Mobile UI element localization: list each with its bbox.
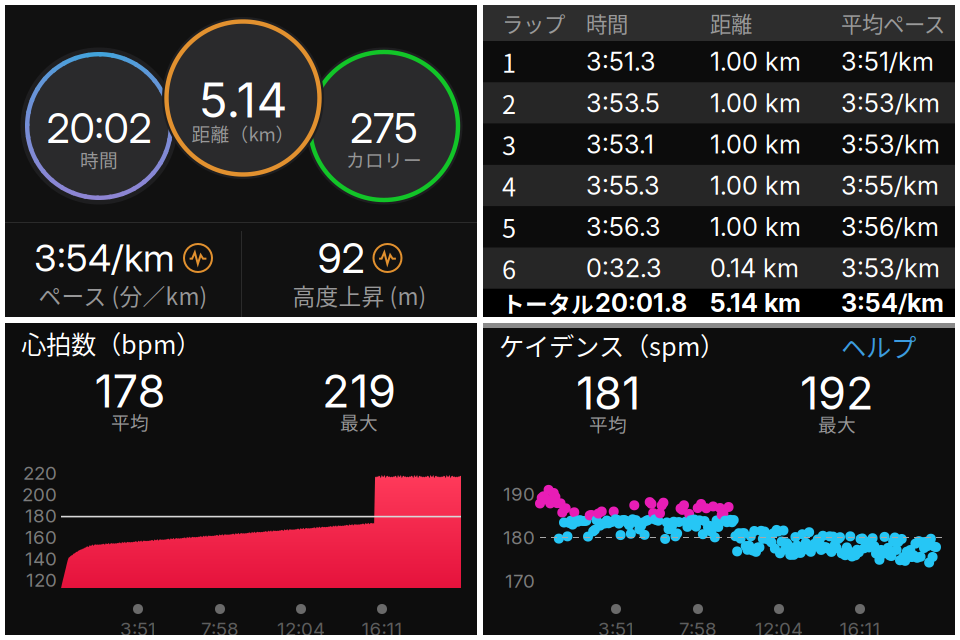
staticText: 平均 — [589, 410, 627, 437]
staticText: 3:55.3 — [586, 170, 660, 201]
staticText: 5 — [502, 208, 516, 245]
staticText: 3:51 — [120, 618, 156, 640]
staticText: 20:02 — [46, 103, 151, 153]
staticText: 1.00 km — [710, 46, 801, 77]
staticText: 距離 — [710, 8, 752, 38]
staticText: 1 — [502, 43, 516, 80]
staticText: 219 — [322, 364, 396, 418]
staticText: ペース (分／km) — [38, 279, 207, 311]
staticText: ラップ — [502, 8, 565, 38]
staticText: 3:53.5 — [586, 88, 660, 118]
staticText: 1.00 km — [710, 211, 801, 242]
staticText: 180 — [25, 504, 57, 527]
staticText: トータル — [502, 286, 594, 319]
staticText: 距離（km） — [191, 119, 294, 146]
staticText: 178 — [94, 364, 165, 418]
staticText: 3:53∕km — [841, 253, 940, 283]
staticText: 3:53∕km — [841, 129, 940, 160]
staticText: 181 — [576, 366, 640, 420]
staticText: 時間 — [80, 146, 118, 173]
staticText: 2 — [502, 85, 516, 121]
staticText: 最大 — [340, 408, 378, 435]
staticText: 時間 — [586, 8, 628, 38]
staticText: 1.00 km — [710, 88, 801, 118]
staticText: 120 — [26, 569, 57, 591]
staticText: 5.14 km — [710, 288, 801, 318]
staticText: 5.14 — [198, 71, 287, 129]
staticText: 最大 — [818, 410, 856, 437]
staticText: 220 — [23, 462, 57, 484]
staticText: 7:58 — [679, 618, 717, 640]
staticText: 1.00 km — [710, 170, 801, 201]
staticText: 170 — [505, 570, 535, 592]
staticText: カロリー — [346, 146, 422, 173]
staticText: 3:56∕km — [841, 211, 939, 242]
staticText: 平均ペース — [841, 8, 945, 38]
staticText: 3:51∕km — [841, 46, 934, 77]
staticText: 192 — [800, 366, 874, 420]
staticText: 20:01.8 — [595, 288, 687, 318]
staticText: 3:53.1 — [586, 129, 654, 160]
staticText: 200 — [22, 483, 57, 506]
staticText: 160 — [25, 526, 57, 548]
staticText: 275 — [350, 103, 418, 153]
staticText: 0.14 km — [710, 253, 799, 283]
staticText: 180 — [503, 526, 535, 549]
staticText: 4 — [502, 167, 516, 204]
staticText: 6 — [502, 250, 516, 286]
staticText: 7:58 — [201, 618, 239, 640]
staticText: 高度上昇 (m) — [292, 279, 426, 311]
staticText: 心拍数（bpm） — [21, 325, 201, 361]
staticText: 3:54∕km — [34, 235, 175, 281]
staticText: 3:56.3 — [586, 211, 661, 242]
staticText: 16:11 — [839, 618, 880, 640]
staticText: 3:53∕km — [841, 88, 940, 118]
staticText: 3:54∕km — [841, 288, 944, 318]
staticText: 140 — [25, 547, 57, 570]
staticText: ヘルプ — [841, 328, 916, 364]
staticText: 3:51 — [598, 618, 634, 640]
staticText: 92 — [317, 233, 364, 283]
staticText: 12:04 — [755, 618, 803, 640]
staticText: 0:32.3 — [586, 253, 662, 283]
staticText: ケイデンス（spm） — [499, 327, 725, 363]
staticText: 3 — [502, 126, 516, 163]
staticText: 3:51.3 — [586, 46, 656, 77]
staticText: 190 — [503, 483, 535, 505]
staticText: 12:04 — [277, 618, 325, 640]
staticText: 1.00 km — [710, 129, 801, 160]
staticText: 3:55∕km — [841, 170, 939, 201]
staticText: 平均 — [111, 408, 149, 435]
staticText: 16:11 — [361, 618, 402, 640]
